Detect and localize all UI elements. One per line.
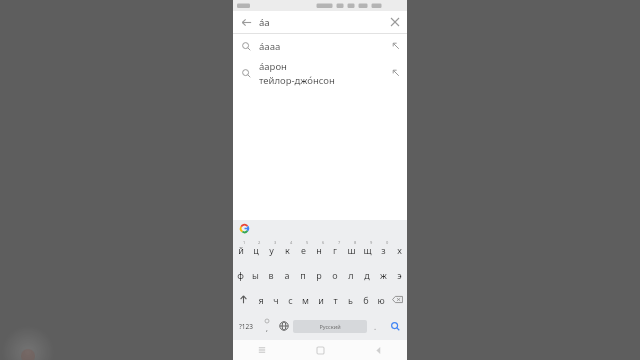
button[interactable]: ц <box>248 237 263 262</box>
button[interactable]: ь <box>343 287 358 312</box>
staticText: áарон <box>259 60 287 73</box>
button[interactable]: ш <box>343 237 359 262</box>
staticText: д <box>364 269 370 281</box>
button[interactable]: я <box>253 287 268 312</box>
button[interactable]: с <box>283 287 298 312</box>
staticText: áaaa <box>259 40 281 53</box>
staticText: х <box>397 244 402 256</box>
staticText: ж <box>380 269 387 281</box>
staticText: я <box>258 294 264 306</box>
staticText: áa <box>259 16 270 29</box>
staticText: ф <box>237 269 244 281</box>
button[interactable]: áарон <box>233 58 407 88</box>
staticText: з <box>381 244 386 256</box>
staticText: р <box>316 269 322 281</box>
button[interactable]: у <box>263 237 279 262</box>
button[interactable]: ф <box>233 262 248 287</box>
staticText: э <box>397 269 402 281</box>
button[interactable]: д <box>359 262 375 287</box>
staticText: ь <box>348 294 353 306</box>
button[interactable]: Recent apps <box>233 340 291 360</box>
staticText: т <box>333 294 338 306</box>
staticText: в <box>268 269 274 281</box>
button[interactable]: Home <box>291 340 349 360</box>
button[interactable]: Back <box>233 11 259 33</box>
staticText: м <box>302 294 309 306</box>
button[interactable]: т <box>328 287 343 312</box>
button[interactable]: Clear query <box>383 11 407 33</box>
button[interactable]: Backspace <box>388 287 407 312</box>
button[interactable]: л <box>343 262 359 287</box>
button[interactable]: Shift <box>233 287 253 312</box>
button[interactable]: Русский <box>293 320 367 333</box>
button[interactable]: áaaa <box>233 34 407 58</box>
button[interactable]: ю <box>373 287 388 312</box>
button[interactable]: х <box>391 237 407 262</box>
staticText: 0 <box>386 240 389 245</box>
staticText: с <box>288 294 293 306</box>
staticText: 3 <box>274 240 277 245</box>
button[interactable]: ж <box>375 262 391 287</box>
button[interactable]: ч <box>268 287 283 312</box>
button[interactable]: к <box>279 237 295 262</box>
staticText: а <box>284 269 290 281</box>
button[interactable]: м <box>298 287 313 312</box>
staticText: ы <box>252 269 259 281</box>
staticText: ц <box>253 244 259 256</box>
staticText: 4 <box>290 240 293 245</box>
button[interactable]: и <box>313 287 328 312</box>
staticText: , <box>266 324 268 334</box>
button[interactable]: Google search <box>238 222 251 235</box>
staticText: 9 <box>370 240 373 245</box>
staticText: е <box>301 244 306 256</box>
staticText: щ <box>363 244 372 256</box>
button[interactable]: Comma <box>259 312 275 340</box>
staticText: й <box>238 244 244 256</box>
button[interactable]: а <box>279 262 295 287</box>
button[interactable]: э <box>391 262 407 287</box>
button[interactable]: ы <box>248 262 263 287</box>
staticText: 8 <box>354 240 357 245</box>
button[interactable]: з <box>375 237 391 262</box>
button[interactable]: Back <box>349 340 407 360</box>
staticText: . <box>374 321 377 332</box>
button[interactable]: о <box>327 262 343 287</box>
staticText: ?123 <box>239 322 253 331</box>
staticText: 1 <box>243 240 246 245</box>
staticText: ю <box>377 294 385 306</box>
staticText: ш <box>347 244 356 256</box>
staticText: 2 <box>258 240 261 245</box>
button[interactable]: Change language <box>275 312 293 340</box>
button[interactable]: н <box>311 237 327 262</box>
staticText: тейлор-джо́нсон <box>259 74 335 87</box>
staticText: л <box>348 269 354 281</box>
button[interactable]: п <box>295 262 311 287</box>
staticText: о <box>332 269 338 281</box>
staticText: ч <box>273 294 279 306</box>
button[interactable]: щ <box>359 237 375 262</box>
button[interactable]: Search <box>383 312 407 340</box>
staticText: 6 <box>322 240 325 245</box>
staticText: б <box>363 294 369 306</box>
button[interactable]: б <box>358 287 373 312</box>
button[interactable]: ?123 <box>233 312 259 340</box>
button[interactable]: е <box>295 237 311 262</box>
button[interactable]: в <box>263 262 279 287</box>
staticText: Русский <box>319 323 341 330</box>
staticText: п <box>300 269 306 281</box>
staticText: 5 <box>306 240 309 245</box>
button[interactable]: г <box>327 237 343 262</box>
staticText: н <box>316 244 322 256</box>
staticText: у <box>269 244 274 256</box>
button[interactable]: р <box>311 262 327 287</box>
button[interactable]: й <box>233 237 248 262</box>
button[interactable]: Insert suggestion <box>385 58 407 88</box>
button[interactable]: Insert suggestion <box>385 34 407 58</box>
staticText: 7 <box>338 240 341 245</box>
staticText: и <box>318 294 324 306</box>
staticText: г <box>333 244 337 256</box>
staticText: к <box>285 244 290 256</box>
